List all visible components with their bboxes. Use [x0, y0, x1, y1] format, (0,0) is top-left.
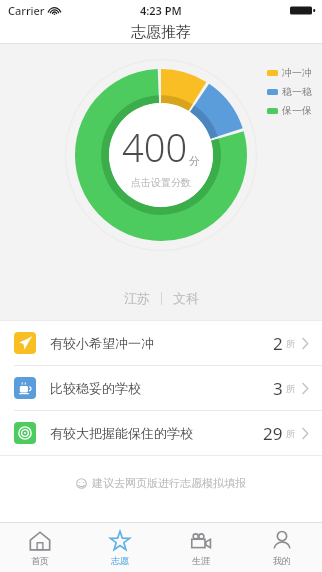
- button[interactable]: 有较大把握能保住的学校: [0, 411, 322, 455]
- button[interactable]: 江苏: [124, 290, 199, 306]
- staticText: 点击设置分数: [131, 176, 191, 189]
- button[interactable]: 冲一冲: [267, 66, 312, 79]
- button[interactable]: 我的: [241, 523, 322, 572]
- staticText: 文科: [173, 290, 199, 306]
- staticText: 首页: [31, 555, 49, 566]
- staticText: 生涯: [192, 555, 210, 566]
- staticText: 我的: [273, 555, 291, 566]
- button[interactable]: 保一保: [267, 104, 312, 117]
- staticText: 有较大把握能保住的学校: [50, 425, 193, 441]
- staticText: 保一保: [282, 104, 312, 117]
- button[interactable]: 建议去网页版进行志愿模拟填报: [76, 476, 246, 490]
- button[interactable]: 首页: [0, 523, 80, 572]
- staticText: 志愿推荐: [131, 23, 191, 42]
- button[interactable]: 志愿: [80, 523, 160, 572]
- staticText: 3: [273, 377, 283, 400]
- staticText: 分: [189, 154, 200, 168]
- staticText: 4:23 PM: [140, 3, 182, 18]
- button[interactable]: 比较稳妥的学校: [0, 366, 322, 410]
- staticText: 稳一稳: [282, 85, 312, 98]
- staticText: 冲一冲: [282, 66, 312, 79]
- staticText: 所: [286, 338, 295, 349]
- staticText: 建议去网页版进行志愿模拟填报: [92, 476, 246, 490]
- staticText: 所: [286, 428, 295, 439]
- staticText: 有较小希望冲一冲: [50, 335, 154, 351]
- staticText: 所: [286, 383, 295, 394]
- staticText: 江苏: [124, 290, 150, 306]
- staticText: 29: [263, 422, 283, 445]
- staticText: 志愿: [111, 555, 129, 566]
- button[interactable]: 生涯: [160, 523, 241, 572]
- staticText: 2: [273, 332, 283, 355]
- button[interactable]: 400: [64, 58, 258, 252]
- button[interactable]: 稳一稳: [267, 85, 312, 98]
- staticText: 比较稳妥的学校: [50, 380, 141, 396]
- button[interactable]: 有较小希望冲一冲: [0, 321, 322, 365]
- staticText: Carrier: [8, 3, 45, 18]
- staticText: 400: [122, 121, 188, 173]
